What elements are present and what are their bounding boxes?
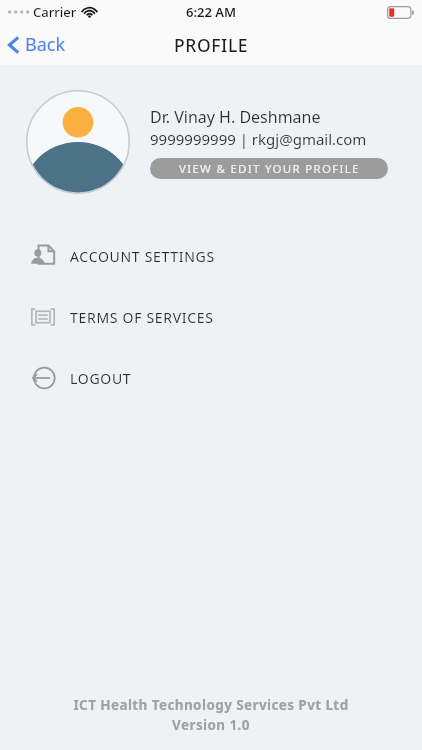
staticText: TERMS OF SERVICES [70, 308, 214, 327]
staticText: Dr. Vinay H. Deshmane [150, 106, 321, 128]
button[interactable]: VIEW & EDIT YOUR PROFILE [150, 158, 388, 179]
other: Account settings [30, 243, 56, 269]
staticText: Version 1.0 [172, 716, 250, 734]
other: Logout [30, 365, 56, 391]
button[interactable]: Account settings [0, 237, 422, 275]
button[interactable]: Terms of services [0, 298, 422, 336]
staticText: VIEW & EDIT YOUR PROFILE [179, 161, 360, 177]
staticText: Back [25, 32, 66, 57]
staticText: Carrier [33, 3, 77, 21]
staticText: LOGOUT [70, 369, 132, 388]
staticText: 6:22 AM [186, 3, 237, 21]
staticText: ACCOUNT SETTINGS [70, 247, 215, 266]
other: Terms of services [30, 304, 56, 330]
button[interactable]: Back [0, 26, 76, 63]
button[interactable]: Logout [0, 359, 422, 397]
staticText: PROFILE [174, 33, 249, 57]
staticText: 9999999999 | rkgj@gmail.com [150, 129, 367, 149]
staticText: ICT Health Technology Services Pvt Ltd [73, 696, 349, 714]
